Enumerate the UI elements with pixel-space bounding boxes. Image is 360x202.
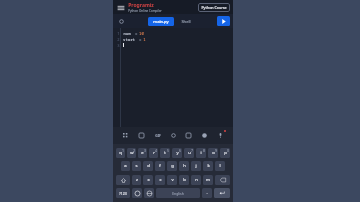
button[interactable]: p (220, 148, 230, 158)
staticText: s (135, 163, 138, 169)
staticText: a (124, 163, 127, 169)
staticText: English (172, 191, 184, 196)
button[interactable]: GIF (152, 130, 163, 141)
staticText: w (130, 150, 134, 156)
button[interactable]: Run (217, 16, 230, 26)
staticText: 1 (117, 31, 120, 36)
button[interactable]: d (143, 161, 153, 171)
button[interactable]: z (132, 175, 141, 185)
staticText: q (119, 150, 122, 156)
button[interactable]: main.py (148, 17, 174, 26)
button[interactable]: u (184, 148, 194, 158)
button[interactable]: Enter (214, 188, 230, 198)
button[interactable]: m (203, 175, 213, 185)
button[interactable]: Shell (177, 17, 195, 26)
staticText: 6 (179, 149, 181, 153)
button[interactable]: q (116, 148, 125, 158)
staticText: 5 (167, 149, 169, 153)
staticText: m (206, 177, 210, 183)
staticText: 9 (215, 149, 217, 153)
staticText: 1 (122, 149, 124, 153)
button[interactable]: English (156, 188, 200, 198)
button[interactable]: Menu (116, 3, 125, 12)
button[interactable]: . (202, 188, 212, 198)
button[interactable]: j (191, 161, 201, 171)
button[interactable]: Settings (168, 130, 179, 141)
staticText: 8 (203, 149, 205, 153)
button[interactable]: Clipboard (136, 130, 147, 141)
button[interactable]: a (121, 161, 130, 171)
staticText: k (207, 163, 210, 169)
staticText: 1 (143, 37, 146, 42)
button[interactable]: n (191, 175, 201, 185)
staticText: 2 (117, 37, 120, 42)
button[interactable]: Backspace (215, 175, 230, 185)
button[interactable]: Python Course (198, 3, 230, 12)
button[interactable]: Voice input (215, 130, 226, 141)
staticText: x (147, 177, 150, 183)
button[interactable]: r (149, 148, 158, 158)
button[interactable]: x (143, 175, 153, 185)
staticText: start (123, 37, 135, 42)
button[interactable]: t (160, 148, 170, 158)
staticText: n (195, 177, 198, 183)
button[interactable]: Translate (183, 130, 194, 141)
staticText: j (195, 163, 197, 169)
staticText: 7 (191, 149, 193, 153)
button[interactable]: s (132, 161, 141, 171)
staticText: u (188, 150, 191, 156)
staticText: e (141, 150, 144, 156)
staticText: = (135, 37, 143, 42)
button[interactable]: Stickers (199, 130, 210, 141)
staticText: l (219, 163, 221, 169)
staticText: o (212, 150, 215, 156)
staticText: Programiz (128, 2, 154, 9)
staticText: c (159, 177, 162, 183)
staticText: Shell (181, 19, 191, 24)
staticText: . (206, 190, 208, 196)
button[interactable]: Emoji (132, 188, 142, 198)
staticText: GIF (155, 133, 161, 138)
staticText: d (147, 163, 150, 169)
staticText: v (171, 177, 174, 183)
staticText: = (131, 31, 139, 36)
staticText: num (123, 31, 131, 36)
button[interactable]: Settings (116, 16, 126, 26)
button[interactable]: g (167, 161, 177, 171)
button[interactable]: l (215, 161, 225, 171)
button[interactable]: o (208, 148, 218, 158)
button[interactable]: Apps (120, 130, 131, 141)
button[interactable]: Language (144, 188, 154, 198)
button[interactable]: w (127, 148, 136, 158)
staticText: 2 (133, 149, 135, 153)
button[interactable]: e (138, 148, 147, 158)
staticText: z (136, 177, 138, 183)
button[interactable]: ?123 (116, 188, 130, 198)
staticText: ?123 (119, 191, 127, 196)
button[interactable]: h (179, 161, 189, 171)
button[interactable]: y (172, 148, 182, 158)
button[interactable]: b (179, 175, 189, 185)
staticText: 0 (227, 149, 229, 153)
button[interactable]: v (167, 175, 177, 185)
staticText: p (224, 150, 227, 156)
staticText: t (164, 150, 166, 156)
staticText: main.py (153, 19, 169, 24)
staticText: g (171, 163, 174, 169)
button[interactable]: Shift (116, 175, 130, 185)
staticText: 3 (117, 43, 120, 48)
button[interactable]: i (196, 148, 206, 158)
button[interactable]: f (155, 161, 165, 171)
button[interactable]: c (155, 175, 165, 185)
staticText: Python Course (201, 5, 227, 10)
staticText: b (183, 177, 186, 183)
staticText: y (176, 150, 179, 156)
button[interactable]: k (203, 161, 213, 171)
staticText: 10 (139, 31, 144, 36)
staticText: r (153, 150, 155, 156)
staticText: 4 (155, 149, 157, 153)
staticText: i (200, 150, 202, 156)
staticText: 3 (144, 149, 146, 153)
staticText: Python Online Compiler (128, 9, 162, 13)
staticText: f (159, 163, 161, 169)
